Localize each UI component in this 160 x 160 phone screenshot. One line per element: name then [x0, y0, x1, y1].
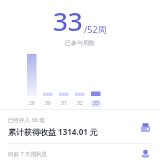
other: Total earnings [138, 120, 152, 134]
button[interactable]: 29 [0, 47, 160, 109]
staticText: 已参与周数 [0, 39, 160, 47]
staticText: 累计获得收益 1314.01 元 [8, 126, 98, 137]
staticText: 目前 7 天期利息 [8, 150, 48, 158]
staticText: 29 [29, 100, 35, 107]
staticText: 33 [93, 100, 99, 107]
button[interactable]: 33 [0, 3, 160, 38]
button[interactable]: 已经存入 36 笔 [0, 114, 160, 139]
staticText: 32 [77, 100, 83, 107]
staticText: 30 [45, 100, 51, 107]
button[interactable]: 目前 7 天期利息 [0, 148, 160, 160]
staticText: /52周 [84, 23, 107, 35]
staticText: 已经存入 36 笔 [8, 116, 45, 124]
staticText: 33 [53, 3, 83, 38]
staticText: 31 [61, 100, 67, 107]
other: Total withdrawals [138, 150, 152, 158]
